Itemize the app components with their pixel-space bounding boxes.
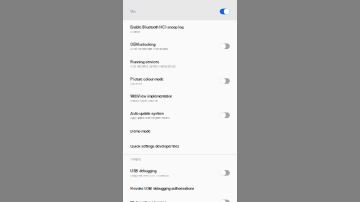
staticText: Demo mode xyxy=(130,129,150,134)
staticText: Quick settings developer tiles xyxy=(130,144,179,149)
staticText: USB debugging xyxy=(130,168,156,173)
button[interactable]: Quick settings developer tiles xyxy=(123,138,237,154)
button[interactable]: Picture colour mode xyxy=(123,72,237,89)
staticText: Auto update system xyxy=(130,111,163,116)
button[interactable]: Wi-Fi verbose logging xyxy=(123,195,237,202)
staticText: Debugging xyxy=(130,158,140,161)
staticText: Debug mode when USB is connected xyxy=(130,174,168,177)
staticText: Enable Bluetooth HCI snoop log xyxy=(130,25,183,29)
staticText: View and control currently running servi… xyxy=(130,65,175,68)
button[interactable]: Auto update system xyxy=(123,106,237,124)
button[interactable]: USB debugging xyxy=(123,164,237,181)
staticText: WebView implementation xyxy=(130,94,172,98)
staticText: Allow the bootloader to be unlocked xyxy=(130,47,167,50)
button[interactable]: Enable Bluetooth HCI snoop log xyxy=(123,20,237,37)
button[interactable]: WebView implementation xyxy=(123,89,237,106)
staticText: Android System WebView xyxy=(130,99,158,102)
button[interactable]: Revoke USB debugging authorisations xyxy=(123,181,237,195)
staticText: On xyxy=(130,9,135,14)
staticText: OEM unlocking xyxy=(130,42,155,47)
staticText: Picture colour mode xyxy=(130,77,163,81)
button[interactable]: OEM unlocking xyxy=(123,37,237,55)
staticText: Use sRGB xyxy=(130,82,142,85)
staticText: Running services xyxy=(130,59,159,64)
staticText: Disabled xyxy=(130,30,139,33)
staticText: Revoke USB debugging authorisations xyxy=(130,186,194,191)
staticText: Apply updates when the phone restarts xyxy=(130,116,169,119)
staticText: Wi-Fi verbose logging xyxy=(130,200,166,202)
button[interactable]: Running services xyxy=(123,55,237,72)
button[interactable]: Demo mode xyxy=(123,124,237,138)
